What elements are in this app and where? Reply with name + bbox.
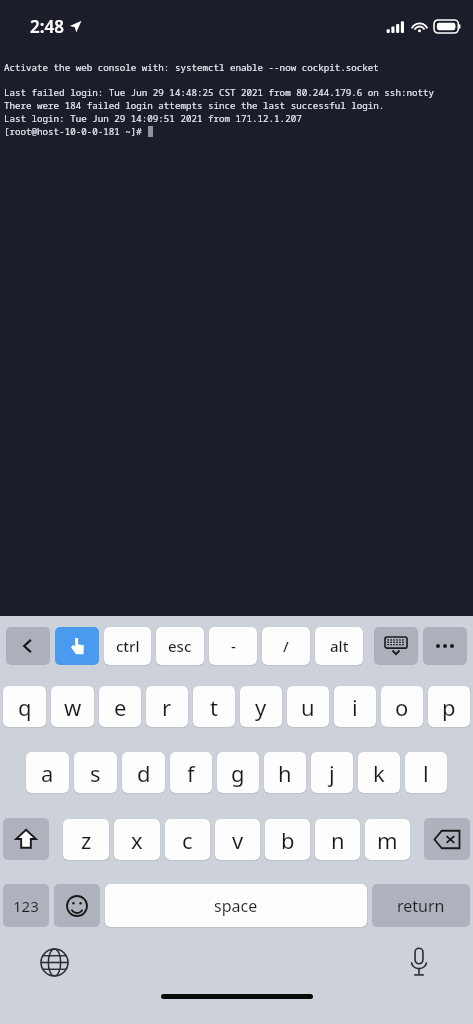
button[interactable]: y — [240, 686, 282, 727]
staticText: g — [231, 758, 245, 788]
button[interactable]: p — [428, 686, 470, 727]
button[interactable]: Hide keyboard — [374, 627, 418, 665]
button[interactable]: v — [215, 819, 260, 860]
staticText: Last failed login: Tue Jun 29 14:48:25 C… — [4, 86, 434, 99]
staticText: 123 — [13, 896, 39, 916]
staticText: y — [255, 692, 267, 722]
staticText: a — [41, 758, 54, 788]
button[interactable]: r — [146, 686, 188, 727]
button[interactable]: f — [170, 752, 212, 793]
button[interactable]: c — [165, 819, 210, 860]
button[interactable]: - — [209, 627, 257, 665]
staticText: t — [210, 692, 218, 722]
staticText: z — [81, 825, 92, 855]
staticText: v — [232, 825, 244, 855]
staticText: c — [182, 825, 193, 855]
staticText: o — [395, 692, 409, 722]
button[interactable]: / — [262, 627, 310, 665]
staticText: w — [64, 692, 82, 722]
staticText: Last login: Tue Jun 29 14:09:51 2021 fro… — [4, 112, 302, 125]
staticText: x — [131, 825, 143, 855]
button[interactable]: Back — [6, 627, 50, 665]
staticText: b — [281, 825, 295, 855]
staticText: i — [352, 692, 358, 722]
button[interactable]: m — [365, 819, 410, 860]
button[interactable]: n — [315, 819, 360, 860]
staticText: h — [278, 758, 292, 788]
button[interactable]: return — [372, 884, 470, 927]
staticText: p — [442, 692, 456, 722]
staticText: f — [187, 758, 195, 788]
button[interactable]: o — [381, 686, 423, 727]
staticText: m — [377, 825, 398, 855]
staticText: d — [137, 758, 151, 788]
staticText: j — [329, 758, 335, 788]
button[interactable]: b — [265, 819, 310, 860]
staticText: 2:48 — [30, 15, 64, 38]
button[interactable]: j — [311, 752, 353, 793]
button[interactable]: Change language — [36, 944, 72, 980]
staticText: - — [231, 636, 236, 656]
staticText: e — [114, 692, 127, 722]
button[interactable]: q — [3, 686, 46, 727]
button[interactable]: More options — [423, 627, 467, 665]
button[interactable]: ctrl — [104, 627, 151, 665]
button[interactable]: Dictation — [401, 944, 437, 980]
staticText: space — [214, 895, 258, 917]
button[interactable]: l — [405, 752, 447, 793]
staticText: esc — [168, 636, 192, 656]
button[interactable]: h — [264, 752, 306, 793]
staticText: l — [423, 758, 429, 788]
staticText: [root@host-10-0-0-181 ~]# — [4, 125, 148, 138]
button[interactable]: Shift — [3, 818, 49, 860]
staticText: q — [18, 692, 32, 722]
staticText: / — [283, 636, 289, 656]
button[interactable]: Touch mode — [55, 627, 99, 665]
button[interactable]: esc — [156, 627, 204, 665]
staticText: There were 184 failed login attempts sin… — [4, 99, 385, 112]
staticText: alt — [330, 636, 349, 656]
button[interactable]: Backspace — [424, 818, 470, 860]
button[interactable]: i — [334, 686, 376, 727]
button[interactable]: alt — [315, 627, 363, 665]
button[interactable]: e — [99, 686, 141, 727]
button[interactable]: w — [51, 686, 94, 727]
button[interactable]: u — [287, 686, 329, 727]
staticText: s — [90, 758, 101, 788]
button[interactable]: t — [193, 686, 235, 727]
button[interactable]: Emoji — [54, 884, 100, 927]
button[interactable]: g — [217, 752, 259, 793]
button[interactable]: a — [26, 752, 69, 793]
button[interactable]: space — [105, 884, 367, 927]
button[interactable]: z — [63, 819, 109, 860]
staticText: n — [331, 825, 345, 855]
staticText: r — [162, 692, 172, 722]
staticText: return — [397, 895, 445, 917]
staticText: u — [301, 692, 315, 722]
staticText: ctrl — [116, 636, 140, 656]
button[interactable]: s — [74, 752, 117, 793]
button[interactable]: k — [358, 752, 400, 793]
button[interactable]: x — [114, 819, 160, 860]
staticText: k — [373, 758, 385, 788]
button[interactable]: 123 — [3, 884, 49, 927]
button[interactable]: d — [122, 752, 165, 793]
staticText: Activate the web console with: systemctl… — [4, 61, 379, 74]
